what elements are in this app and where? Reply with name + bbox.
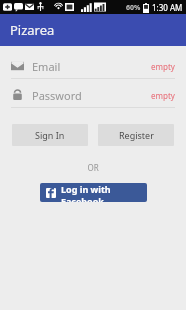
staticText: Register xyxy=(119,129,154,141)
staticText: Sign In xyxy=(35,129,65,141)
button[interactable]: Email xyxy=(0,54,186,78)
button[interactable]: Log in with Facebook xyxy=(40,183,147,202)
staticText: 60% xyxy=(126,3,141,13)
staticText: empty xyxy=(151,90,175,101)
button[interactable]: Sign In xyxy=(12,124,88,146)
staticText: 1:30 AM xyxy=(152,2,183,13)
staticText: Password xyxy=(32,88,82,103)
button[interactable]: Register xyxy=(98,124,174,146)
staticText: OR xyxy=(0,162,186,173)
staticText: empty xyxy=(151,61,175,72)
staticText: Log in with Facebook xyxy=(61,183,141,202)
button[interactable]: Password xyxy=(0,83,186,107)
staticText: Pizarea xyxy=(10,21,55,39)
staticText: Email xyxy=(32,59,61,74)
